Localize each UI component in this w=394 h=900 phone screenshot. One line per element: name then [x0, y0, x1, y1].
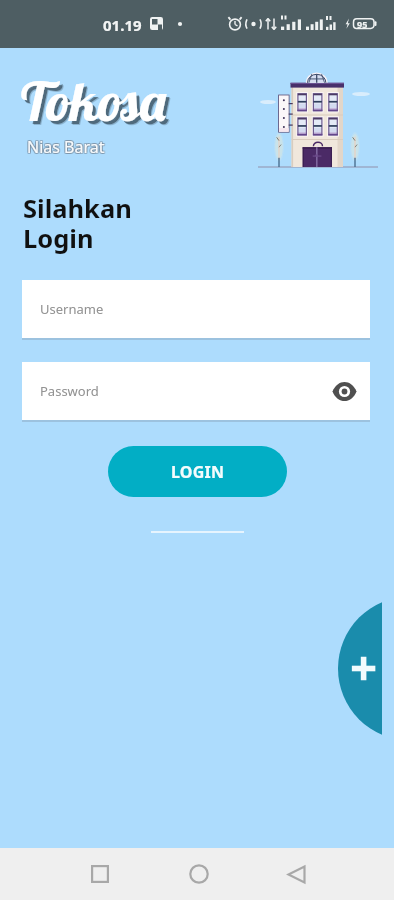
staticText: 01.19: [103, 15, 142, 35]
staticText: Tokosa: [21, 70, 172, 138]
staticText: Tokosa: [18, 67, 169, 135]
button[interactable]: Recents: [78, 848, 122, 900]
button[interactable]: Password: [22, 362, 370, 420]
staticText: Nias Barat: [28, 137, 106, 159]
staticText: Nias Barat: [27, 135, 105, 157]
staticText: Nias Barat: [27, 137, 105, 159]
button[interactable]: Show password: [330, 377, 358, 405]
staticText: Tokosa: [22, 71, 173, 139]
staticText: Nias Barat: [26, 136, 104, 158]
staticText: Nias Barat: [27, 136, 105, 158]
button[interactable]: Back: [274, 848, 318, 900]
button[interactable]: Add: [338, 602, 382, 735]
staticText: LOGIN: [171, 461, 225, 483]
staticText: Silahkan Login: [23, 191, 132, 256]
button[interactable]: Home: [177, 848, 221, 900]
staticText: Username: [40, 300, 104, 318]
staticText: 95: [357, 18, 368, 30]
button[interactable]: LOGIN: [108, 446, 287, 497]
staticText: Nias Barat: [26, 137, 104, 159]
staticText: Nias Barat: [26, 135, 104, 157]
button[interactable]: Username: [22, 280, 370, 338]
staticText: Nias Barat: [28, 136, 106, 158]
staticText: Password: [40, 382, 99, 400]
staticText: Nias Barat: [28, 135, 106, 157]
